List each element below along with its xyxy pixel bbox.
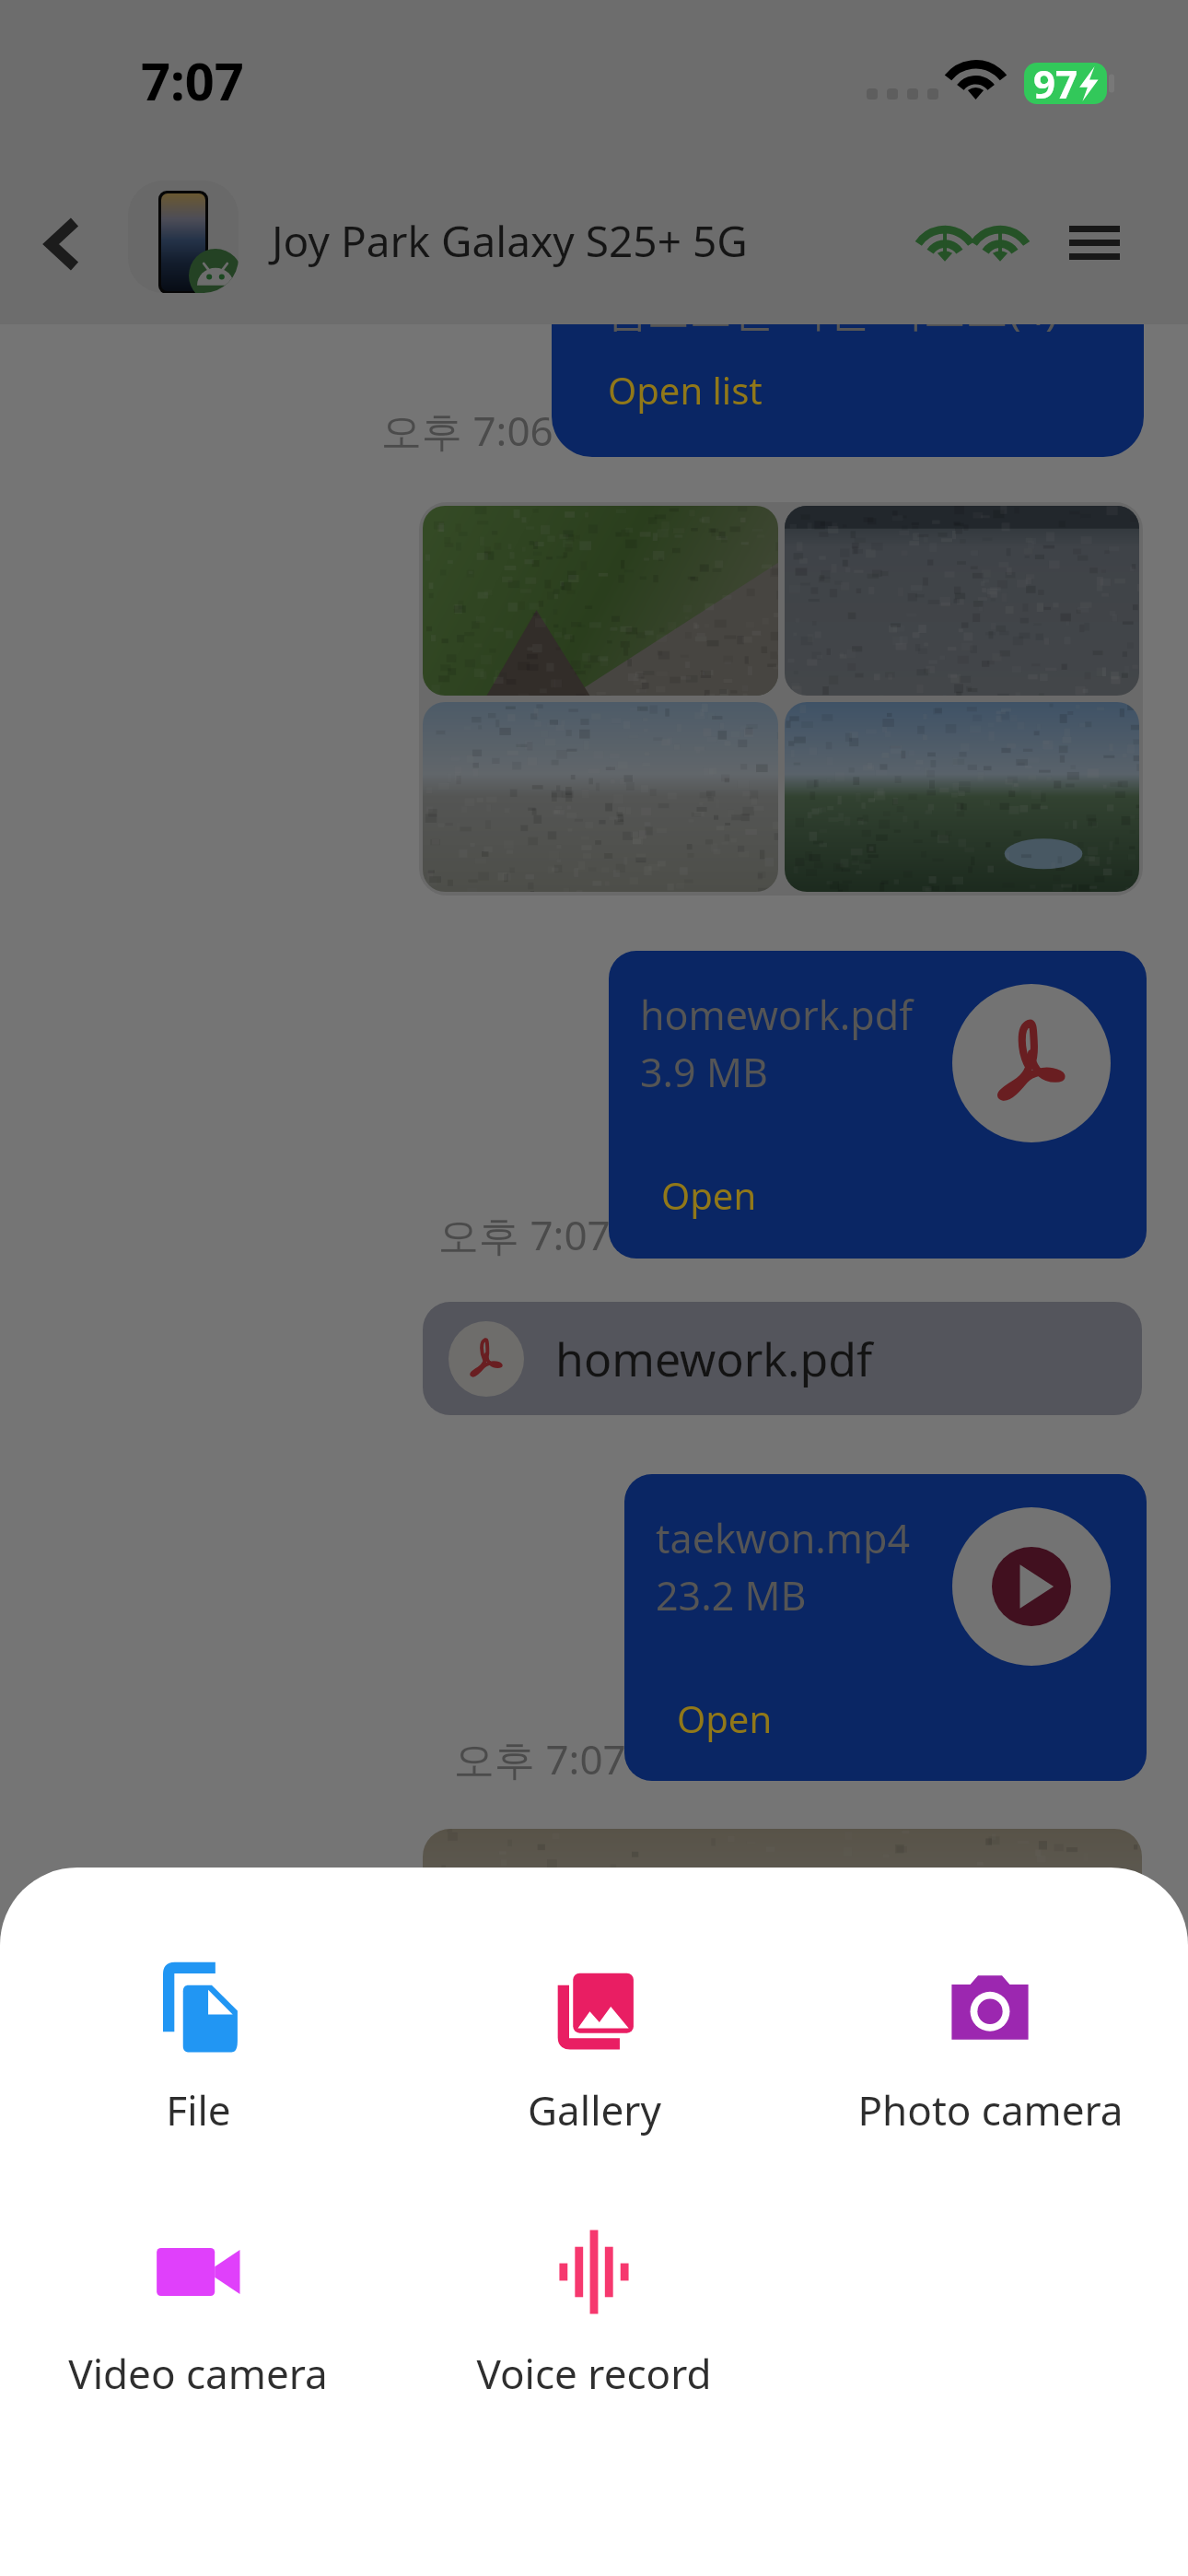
button[interactable]: Photo camera [806, 1921, 1174, 2142]
button[interactable]: Voice record [410, 2184, 778, 2406]
staticText: 오후 7:06 [381, 403, 553, 458]
staticText: Joy Park Galaxy S25+ 5G [272, 212, 748, 270]
staticText: Open list [608, 365, 763, 415]
staticText: 23.2 MB [656, 1568, 807, 1622]
staticText: 7:07 [141, 45, 244, 115]
staticText: Open [677, 1693, 773, 1743]
button[interactable]: Photos [419, 502, 1143, 896]
staticText: 오후 7:07 [438, 1207, 611, 1262]
staticText: File [166, 2082, 231, 2137]
staticText: 업로드한 파일 리스트(4) [605, 280, 1058, 338]
staticText: taekwon.mp4 [656, 1511, 911, 1565]
staticText: Voice record [476, 2346, 712, 2401]
button[interactable]: taekwon.mp4 [624, 1474, 1147, 1781]
staticText: Video camera [68, 2346, 328, 2401]
staticText: Open [661, 1170, 757, 1220]
button[interactable]: homework.pdf [423, 1302, 1142, 1415]
button[interactable]: 업로드한 파일 리스트(4) [552, 214, 1144, 457]
button[interactable]: Wi-Fi Direct [949, 191, 1052, 294]
button[interactable]: Gallery [410, 1921, 778, 2142]
button[interactable]: Menu [1042, 191, 1146, 294]
staticText: homework.pdf [640, 988, 913, 1042]
staticText: 3.9 MB [640, 1045, 768, 1099]
staticText: homework.pdf [555, 1328, 873, 1390]
button[interactable]: File [14, 1921, 382, 2142]
staticText: Gallery [528, 2082, 661, 2137]
staticText: 오후 7:07 [454, 1731, 626, 1786]
button[interactable]: Back [9, 191, 116, 298]
button[interactable]: Device avatar [128, 181, 239, 293]
button[interactable]: homework.pdf [609, 951, 1147, 1259]
staticText: Photo camera [857, 2082, 1124, 2137]
button[interactable]: Wi-Fi [893, 191, 996, 294]
button[interactable]: Video camera [14, 2184, 382, 2406]
button[interactable]: Video [423, 1829, 1142, 2068]
staticText: 97 [1033, 57, 1078, 110]
